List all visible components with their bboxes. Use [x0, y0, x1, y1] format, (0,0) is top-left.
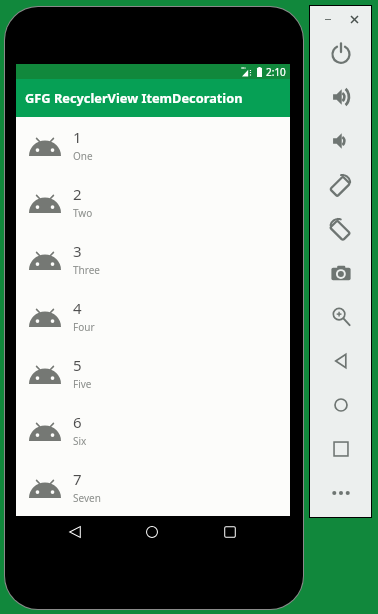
button[interactable]: 5 [16, 345, 290, 402]
staticText: Six [73, 434, 87, 448]
button[interactable]: Back [310, 339, 371, 383]
button[interactable]: More [310, 471, 371, 515]
button[interactable]: Power [310, 31, 371, 75]
staticText: Four [73, 320, 95, 334]
button[interactable]: 6 [16, 402, 290, 459]
staticText: GFG RecyclerView ItemDecoration [25, 89, 243, 106]
button[interactable]: Volume up [310, 75, 371, 119]
button[interactable]: 2 [16, 174, 290, 231]
button[interactable]: Home [310, 383, 371, 427]
staticText: 5 [73, 355, 82, 375]
staticText: One [73, 149, 93, 163]
button[interactable]: Zoom [310, 295, 371, 339]
button[interactable]: Rotate right [310, 207, 371, 251]
staticText: 1 [73, 127, 82, 147]
button[interactable]: Take screenshot [310, 251, 371, 295]
staticText: 7 [73, 469, 82, 489]
staticText: 6 [73, 412, 82, 432]
button[interactable]: Minimize [321, 12, 335, 26]
button[interactable]: Rotate left [310, 163, 371, 207]
staticText: Two [73, 206, 93, 220]
button[interactable]: 1 [16, 117, 290, 174]
staticText: Seven [73, 491, 101, 505]
button[interactable]: 4 [16, 288, 290, 345]
button[interactable]: Home [139, 519, 165, 545]
button[interactable]: 7 [16, 459, 290, 516]
button[interactable]: Close [346, 11, 362, 27]
staticText: 4 [73, 298, 82, 318]
button[interactable]: Overview [310, 427, 371, 471]
button[interactable]: Recents [217, 519, 243, 545]
staticText: Three [73, 263, 100, 277]
staticText: 2 [73, 184, 82, 204]
button[interactable]: Back [62, 519, 88, 545]
button[interactable]: Volume down [310, 119, 371, 163]
button[interactable]: 3 [16, 231, 290, 288]
staticText: Five [73, 377, 92, 391]
staticText: 3 [73, 241, 82, 261]
staticText: 2:10 [266, 65, 286, 79]
